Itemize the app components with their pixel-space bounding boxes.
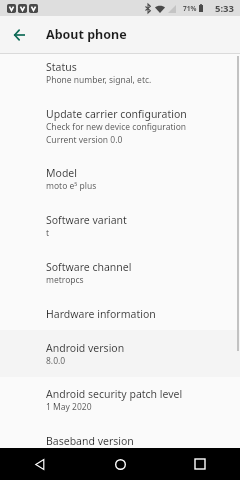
staticText: About phone	[46, 26, 127, 43]
staticText: Model	[46, 166, 77, 180]
staticText: Android version	[46, 341, 125, 355]
button[interactable]: Hardware information	[0, 297, 240, 330]
staticText: Software variant	[46, 213, 127, 227]
staticText: Update carrier configuration	[46, 107, 187, 121]
staticText: Software channel	[46, 260, 132, 274]
button[interactable]: Baseband version	[0, 423, 240, 448]
staticText: Baseband version	[46, 434, 134, 448]
staticText: 1 May 2020	[46, 401, 92, 413]
button[interactable]: Software channel	[0, 249, 240, 297]
button[interactable]: Software variant	[0, 203, 240, 249]
button[interactable]: Status	[0, 54, 240, 96]
staticText: Check for new device configuration	[46, 121, 187, 133]
staticText: Hardware information	[46, 307, 156, 321]
staticText: metropcs	[46, 274, 84, 286]
button[interactable]: Android security patch level	[0, 377, 240, 423]
button[interactable]: Update carrier configuration	[0, 96, 240, 156]
staticText: Status	[46, 60, 77, 74]
staticText: Current version 0.0	[46, 134, 123, 146]
staticText: moto e⁵ plus	[46, 180, 97, 192]
button[interactable]: Model	[0, 156, 240, 203]
button[interactable]: Navigate up	[7, 23, 31, 47]
staticText: 5:33	[215, 2, 234, 15]
button[interactable]: Recent apps	[160, 448, 240, 480]
staticText: Phone number, signal, etc.	[46, 74, 152, 86]
staticText: Android security patch level	[46, 387, 183, 401]
staticText: 8.0.0	[46, 355, 66, 367]
button[interactable]: Home	[80, 448, 160, 480]
button[interactable]: Back	[0, 448, 80, 480]
staticText: t	[46, 227, 50, 239]
button[interactable]: Android version	[0, 330, 240, 377]
staticText: 71%	[183, 4, 197, 13]
